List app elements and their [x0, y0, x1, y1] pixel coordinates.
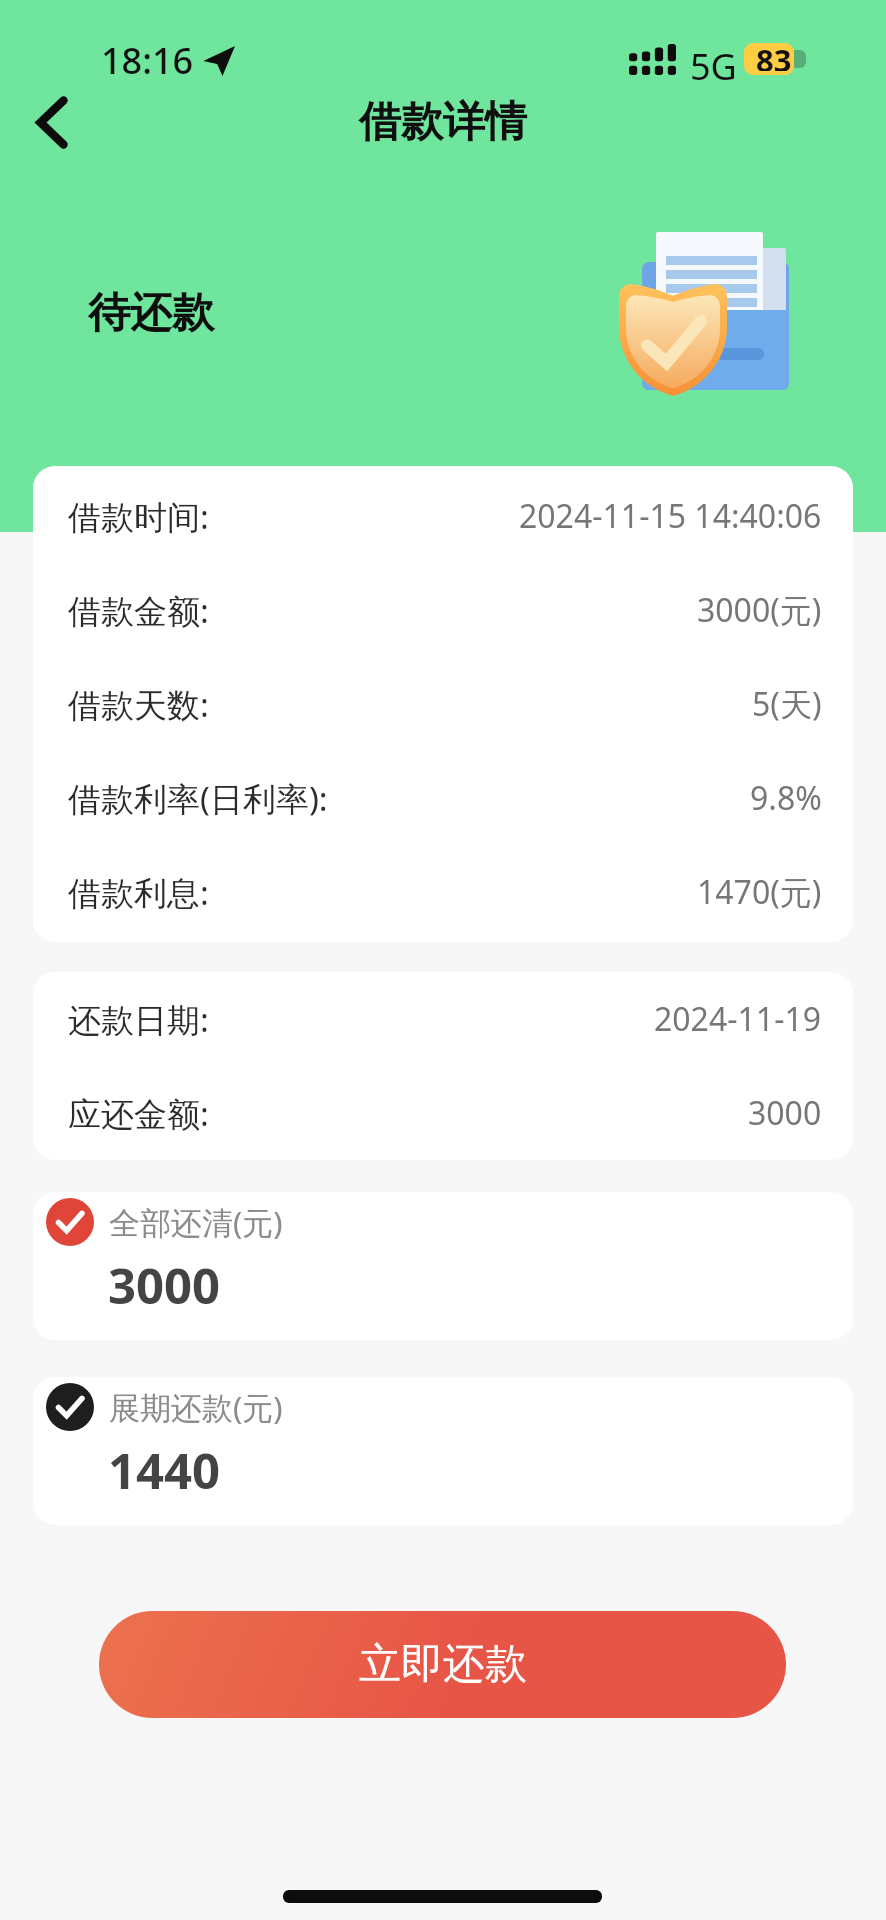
staticText: 还款日期:: [68, 997, 209, 1042]
staticText: 应还金额:: [68, 1091, 209, 1136]
staticText: 待还款: [88, 287, 214, 340]
button[interactable]: 全部还清(元): [33, 1192, 853, 1340]
button[interactable]: 立即还款: [99, 1611, 786, 1718]
staticText: 借款利息:: [68, 870, 209, 915]
button[interactable]: 展期还款(元): [33, 1377, 853, 1525]
button[interactable]: Back: [17, 87, 87, 157]
staticText: 借款时间:: [68, 494, 209, 539]
staticText: 借款利率(日利率):: [68, 776, 328, 821]
staticText: 18:16: [101, 36, 194, 85]
staticText: 1470(元): [697, 870, 822, 914]
staticText: 借款金额:: [68, 588, 209, 633]
staticText: 3000: [748, 1091, 822, 1135]
staticText: 展期还款(元): [109, 1386, 283, 1428]
staticText: 83: [756, 43, 792, 71]
staticText: 立即还款: [359, 1638, 527, 1691]
staticText: 2024-11-19: [654, 997, 822, 1041]
staticText: 9.8%: [750, 776, 822, 820]
staticText: 2024-11-15 14:40:06: [519, 494, 822, 538]
staticText: 借款天数:: [68, 682, 209, 727]
staticText: 5G: [690, 42, 737, 91]
staticText: 5(天): [752, 682, 822, 726]
staticText: 3000: [108, 1252, 221, 1319]
staticText: 借款详情: [359, 96, 527, 149]
staticText: 全部还清(元): [109, 1201, 283, 1243]
staticText: 1440: [108, 1437, 221, 1504]
staticText: 3000(元): [697, 588, 822, 632]
